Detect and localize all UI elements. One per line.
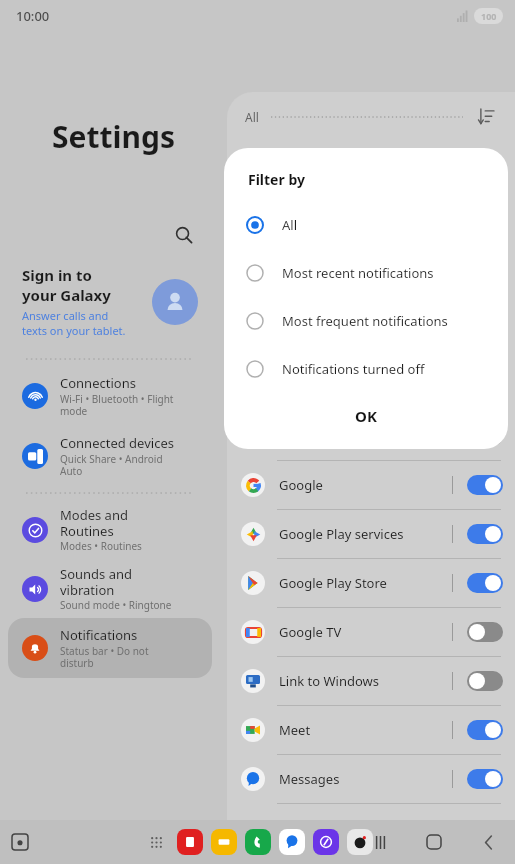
button[interactable]: Google TV xyxy=(227,608,515,656)
staticText: Sounds and vibration xyxy=(60,565,132,598)
staticText: Status bar • Do not disturb xyxy=(60,644,149,670)
staticText: Modes and Routines xyxy=(60,506,128,539)
staticText: texts on your tablet. xyxy=(22,323,126,338)
staticText: Google TV xyxy=(279,623,452,641)
staticText: your Galaxy xyxy=(22,285,111,305)
button[interactable]: Search xyxy=(168,219,200,251)
button[interactable]: Google Play services xyxy=(227,510,515,558)
button[interactable]: Link to Windows xyxy=(227,657,515,705)
button[interactable]: App xyxy=(347,829,373,855)
staticText: Notifications turned off xyxy=(282,360,425,378)
button[interactable]: Google xyxy=(227,461,515,509)
staticText: Quick Share • Android Auto xyxy=(60,452,163,478)
button[interactable]: All xyxy=(224,201,508,249)
button[interactable]: Sort xyxy=(475,106,497,128)
button[interactable]: Notifications turned off xyxy=(224,345,508,393)
staticText: Most recent notifications xyxy=(282,264,434,282)
button[interactable]: App xyxy=(279,829,305,855)
button[interactable]: Sign in to xyxy=(22,265,198,338)
button[interactable]: Google Play services on xyxy=(467,524,503,544)
staticText: 10:00 xyxy=(16,7,50,25)
staticText: Meet xyxy=(279,721,452,739)
staticText: Filter by xyxy=(248,170,305,189)
button[interactable]: Meet on xyxy=(467,720,503,740)
button[interactable]: App xyxy=(177,829,203,855)
staticText: Sound mode • Ringtone xyxy=(60,598,172,612)
button[interactable]: Recents xyxy=(367,829,393,855)
button[interactable]: App xyxy=(313,829,339,855)
button[interactable]: Notifications xyxy=(8,618,212,678)
staticText: Link to Windows xyxy=(279,672,452,690)
button[interactable]: All xyxy=(245,109,259,125)
button[interactable]: OK xyxy=(224,399,508,433)
button[interactable]: Back xyxy=(475,829,501,855)
staticText: All xyxy=(282,216,298,234)
button[interactable]: App xyxy=(245,829,271,855)
staticText: Google Play services xyxy=(279,525,452,543)
button[interactable]: Most frequent notifications xyxy=(224,297,508,345)
button[interactable]: Home xyxy=(421,829,447,855)
button[interactable]: Messages xyxy=(227,755,515,803)
button[interactable]: Connections xyxy=(0,374,220,418)
button[interactable]: All apps xyxy=(143,829,169,855)
staticText: 100 xyxy=(481,10,497,22)
button[interactable]: Sounds and vibration xyxy=(0,565,220,612)
button[interactable]: Recent xyxy=(6,828,34,856)
button[interactable]: Gmail off xyxy=(467,426,503,446)
staticText: Google xyxy=(279,476,452,494)
staticText: Notifications xyxy=(60,626,138,644)
button[interactable]: Connected devices xyxy=(0,434,220,478)
staticText: Messages xyxy=(279,770,452,788)
staticText: Most frequent notifications xyxy=(282,312,448,330)
staticText: Answer calls and xyxy=(22,308,109,323)
staticText: Connected devices xyxy=(60,434,174,452)
button[interactable]: Messages on xyxy=(467,769,503,789)
button[interactable]: App xyxy=(211,829,237,855)
button[interactable]: Google TV off xyxy=(467,622,503,642)
staticText: Modes • Routines xyxy=(60,539,142,553)
button[interactable]: Most recent notifications xyxy=(224,249,508,297)
button[interactable]: Gmail xyxy=(227,412,515,460)
staticText: Wi-Fi • Bluetooth • Flight mode xyxy=(60,392,174,418)
button[interactable]: Google Play Store xyxy=(227,559,515,607)
button[interactable]: Meet xyxy=(227,706,515,754)
staticText: Google Play Store xyxy=(279,574,452,592)
button[interactable]: Link to Windows off xyxy=(467,671,503,691)
button[interactable]: Google Play Store on xyxy=(467,573,503,593)
button[interactable]: Google on xyxy=(467,475,503,495)
button[interactable]: Modes and Routines xyxy=(0,506,220,553)
staticText: Sign in to xyxy=(22,265,92,285)
staticText: Settings xyxy=(52,116,175,157)
staticText: OK xyxy=(355,406,377,426)
staticText: Connections xyxy=(60,374,136,392)
